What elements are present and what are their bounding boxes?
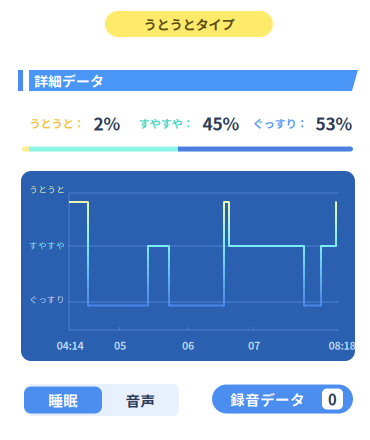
staticText: 05 xyxy=(114,337,126,353)
staticText: 53% xyxy=(315,110,352,136)
staticText: 0 xyxy=(328,388,337,410)
staticText: 詳細データ xyxy=(34,70,104,91)
staticText: ぐっすり xyxy=(29,293,65,305)
staticText: 06 xyxy=(182,337,194,353)
staticText: ぐっすり： xyxy=(252,115,307,131)
button[interactable]: 音声 xyxy=(102,384,179,416)
button[interactable]: 録音データ xyxy=(212,384,353,413)
staticText: すやすや： xyxy=(138,115,193,131)
button[interactable]: うとうとタイプ xyxy=(105,11,273,37)
staticText: うとうと： xyxy=(29,115,84,131)
staticText: 音声 xyxy=(125,389,155,411)
staticText: 07 xyxy=(248,337,260,353)
staticText: 2% xyxy=(93,110,120,136)
staticText: 録音データ xyxy=(230,388,305,410)
button[interactable]: 睡眠 xyxy=(24,384,102,416)
staticText: うとうと xyxy=(29,183,65,195)
staticText: 08:18 xyxy=(328,337,355,353)
staticText: 睡眠 xyxy=(48,389,78,411)
staticText: うとうとタイプ xyxy=(143,14,234,34)
staticText: 04:14 xyxy=(56,337,83,353)
staticText: 45% xyxy=(202,110,239,136)
staticText: すやすや xyxy=(29,239,65,251)
